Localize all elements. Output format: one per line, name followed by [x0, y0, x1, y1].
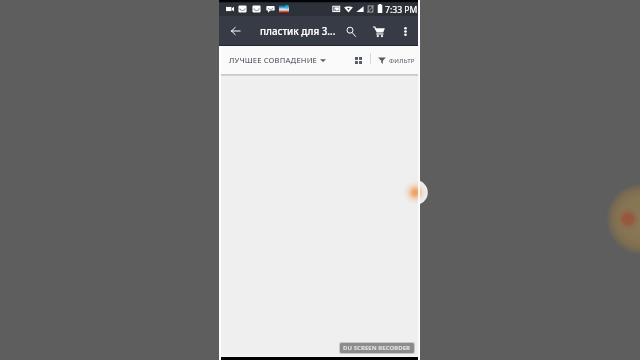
button[interactable]: More options [396, 16, 414, 46]
staticText: пластик для 3... [260, 25, 336, 38]
button[interactable]: Back [224, 16, 246, 46]
staticText: DU SCREEN RECORDER [343, 344, 411, 352]
button[interactable]: Search [340, 16, 362, 46]
staticText: 7:33 PM [385, 4, 418, 16]
staticText: ФИЛЬТР [389, 56, 415, 64]
button[interactable]: ЛУЧШЕЕ СОВПАДЕНИЕ [229, 45, 326, 75]
button[interactable]: ФИЛЬТР [378, 45, 415, 75]
staticText: ЛУЧШЕЕ СОВПАДЕНИЕ [229, 55, 317, 65]
button[interactable]: Grid view [350, 46, 366, 74]
button[interactable]: Shopping cart [368, 16, 390, 46]
